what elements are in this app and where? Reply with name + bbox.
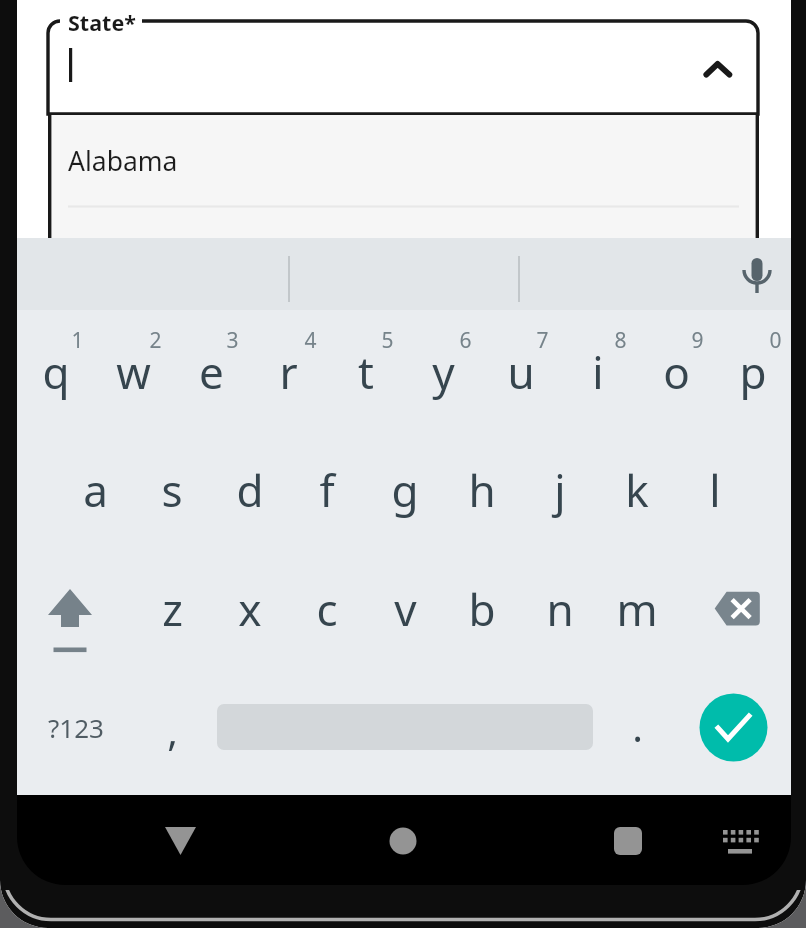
staticText: b [468,579,496,639]
staticText: 6 [459,326,472,355]
staticText: g [391,460,419,520]
staticText: s [161,460,183,520]
button[interactable]: y [383,327,503,417]
button[interactable]: h [422,445,542,535]
staticText: p [739,342,767,402]
staticText: q [42,342,70,402]
button[interactable] [700,575,775,645]
button[interactable]: l [655,445,775,535]
button[interactable]: . [577,681,697,771]
staticText: 4 [304,326,317,355]
button[interactable]: i [538,327,658,417]
staticText: 0 [769,326,782,355]
staticText: f [319,460,335,520]
button[interactable] [593,805,663,875]
button[interactable] [700,694,768,762]
staticText: w [116,342,151,402]
staticText: , [167,703,178,757]
button[interactable]: x [190,564,310,654]
staticText: k [625,460,649,520]
button[interactable] [30,580,110,660]
button[interactable]: o [616,327,736,417]
button[interactable]: r [228,327,348,417]
button[interactable] [145,805,215,875]
staticText: n [546,579,574,639]
button[interactable]: g [345,445,465,535]
staticText: . [632,699,643,753]
button[interactable]: m [577,564,697,654]
button[interactable]: b [422,564,542,654]
button[interactable]: e [151,327,271,417]
staticText: y [432,342,455,402]
staticText: i [592,342,604,402]
button[interactable]: ?123 [16,682,136,772]
staticText: State* [68,8,136,34]
staticText: 8 [614,326,627,355]
button[interactable]: , [112,685,232,775]
staticText: a [83,460,108,520]
button[interactable]: n [500,564,620,654]
button[interactable]: a [35,445,155,535]
button[interactable]: w [73,327,193,417]
staticText: j [554,460,566,520]
staticText: x [238,579,262,639]
staticText: Alabama [68,143,178,179]
staticText: m [616,579,658,639]
button[interactable]: z [112,564,232,654]
staticText: 3 [226,326,239,355]
button[interactable] [368,805,438,875]
staticText: 1 [71,326,84,355]
button[interactable]: d [190,445,310,535]
staticText: 7 [536,326,549,355]
staticText: 5 [381,326,394,355]
staticText: h [468,460,496,520]
staticText: o [663,342,690,402]
staticText: 9 [691,326,704,355]
button[interactable]: t [306,327,426,417]
staticText: r [279,342,298,402]
button[interactable]: s [112,445,232,535]
button[interactable] [710,810,770,870]
button[interactable]: j [500,445,620,535]
staticText: 2 [149,326,162,355]
button[interactable]: q [0,327,116,417]
button[interactable]: c [267,564,387,654]
button[interactable]: f [267,445,387,535]
staticText: ?123 [48,710,104,745]
staticText: e [199,342,224,402]
staticText: t [358,342,374,402]
staticText: d [236,460,264,520]
staticText: v [394,579,417,639]
button[interactable] [17,238,791,310]
button[interactable]: k [577,445,697,535]
button[interactable]: p [693,327,806,417]
button[interactable]: u [461,327,581,417]
button[interactable]: v [345,564,465,654]
button[interactable]: Alabama [48,120,758,202]
staticText: c [316,579,338,639]
staticText: u [507,342,535,402]
staticText: l [709,460,721,520]
staticText: z [162,579,183,639]
